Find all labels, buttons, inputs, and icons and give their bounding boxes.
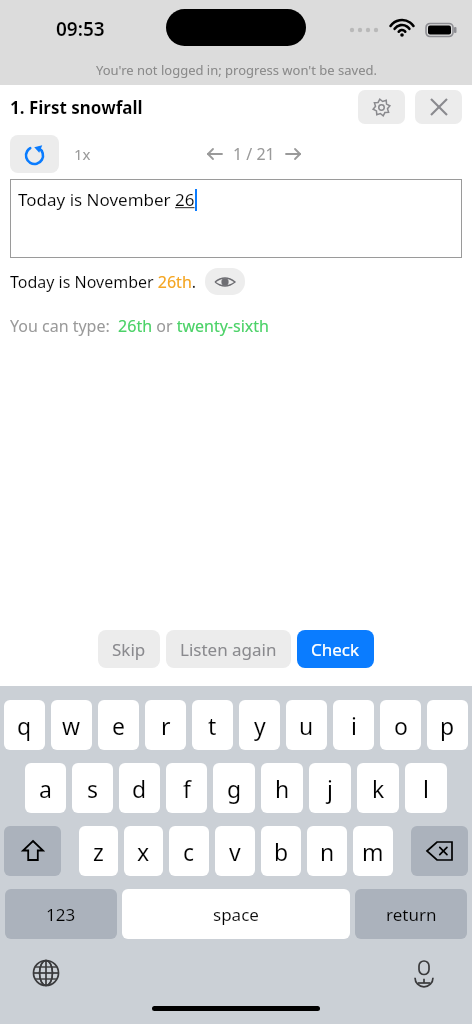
button[interactable]: Check <box>297 630 374 668</box>
button[interactable]: a <box>25 763 66 813</box>
staticText: 09:53 <box>56 16 105 42</box>
button[interactable]: n <box>307 826 347 876</box>
button[interactable]: Settings <box>358 90 405 124</box>
button[interactable]: o <box>380 700 421 750</box>
staticText: w <box>62 710 81 741</box>
staticText: You're not logged in; progress won't be … <box>96 61 377 79</box>
button[interactable]: j <box>309 763 351 813</box>
button[interactable]: Previous <box>201 140 229 168</box>
staticText: y <box>254 710 266 741</box>
staticText: e <box>112 710 125 741</box>
button[interactable]: Replay <box>10 135 59 173</box>
staticText: i <box>351 710 357 741</box>
staticText: x <box>137 836 150 867</box>
staticText: p <box>440 710 455 741</box>
staticText: k <box>372 773 385 804</box>
button[interactable]: Dictate <box>408 957 440 989</box>
button[interactable]: Listen again <box>166 630 291 668</box>
button[interactable]: v <box>215 826 255 876</box>
staticText: u <box>299 710 314 741</box>
button[interactable]: Show answer <box>205 268 245 295</box>
staticText: v <box>229 836 241 867</box>
button[interactable]: y <box>239 700 280 750</box>
button[interactable]: Shift <box>4 826 61 876</box>
button[interactable]: w <box>51 700 92 750</box>
staticText: return <box>386 903 437 926</box>
button[interactable]: 123 <box>5 889 117 939</box>
staticText: 123 <box>46 903 76 926</box>
staticText: Today is November 26th. <box>10 271 197 293</box>
button[interactable]: u <box>286 700 327 750</box>
button[interactable]: Backspace <box>411 826 468 876</box>
staticText: space <box>213 903 259 926</box>
button[interactable]: t <box>192 700 233 750</box>
staticText: l <box>423 773 429 804</box>
button[interactable]: e <box>98 700 139 750</box>
staticText: z <box>93 836 104 867</box>
button[interactable]: q <box>4 700 45 750</box>
button[interactable]: d <box>119 763 160 813</box>
button[interactable]: l <box>405 763 447 813</box>
staticText: r <box>161 710 171 741</box>
staticText: Today is November 26 <box>18 188 195 211</box>
button[interactable]: return <box>355 889 467 939</box>
button[interactable]: Today is November 26 <box>10 179 462 258</box>
button[interactable]: c <box>169 826 209 876</box>
staticText: a <box>39 773 52 804</box>
staticText: t <box>208 710 217 741</box>
button[interactable]: h <box>261 763 303 813</box>
staticText: c <box>183 836 195 867</box>
button[interactable]: f <box>166 763 207 813</box>
button[interactable]: g <box>213 763 255 813</box>
staticText: 1 / 21 <box>233 143 275 165</box>
staticText: f <box>183 773 191 804</box>
button[interactable]: x <box>124 826 163 876</box>
button[interactable]: m <box>353 826 393 876</box>
staticText: n <box>320 836 335 867</box>
staticText: m <box>362 836 384 867</box>
button[interactable]: s <box>72 763 113 813</box>
staticText: o <box>394 710 408 741</box>
button[interactable]: space <box>122 889 350 939</box>
button[interactable]: p <box>427 700 468 750</box>
button[interactable]: Change keyboard <box>30 957 62 989</box>
staticText: q <box>17 710 32 741</box>
button[interactable]: r <box>145 700 186 750</box>
button[interactable]: Skip <box>98 630 160 668</box>
button[interactable]: z <box>79 826 118 876</box>
staticText: j <box>327 773 333 804</box>
staticText: h <box>275 773 290 804</box>
button[interactable]: b <box>261 826 301 876</box>
staticText: Listen again <box>180 638 277 661</box>
staticText: You can type: 26th or twenty-sixth <box>10 315 269 337</box>
button[interactable]: Next <box>279 140 307 168</box>
staticText: g <box>227 773 242 804</box>
staticText: d <box>132 773 147 804</box>
button[interactable]: Close <box>415 90 462 124</box>
staticText: Check <box>311 638 360 661</box>
staticText: 1. First snowfall <box>10 96 143 119</box>
staticText: Skip <box>112 638 146 661</box>
button[interactable]: k <box>357 763 399 813</box>
staticText: s <box>87 773 99 804</box>
staticText: 1x <box>74 144 91 164</box>
staticText: b <box>274 836 289 867</box>
button[interactable]: i <box>333 700 374 750</box>
